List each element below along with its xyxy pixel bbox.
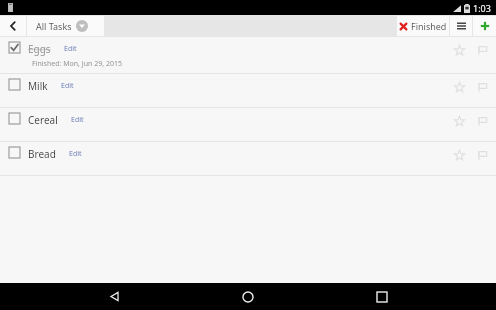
button[interactable]: Star task xyxy=(451,79,467,95)
button[interactable]: Flag task xyxy=(474,42,490,58)
button[interactable]: Recent apps xyxy=(362,283,402,310)
staticText: All Tasks xyxy=(36,20,72,32)
button[interactable]: Unchecked xyxy=(9,147,20,158)
button[interactable]: Finished xyxy=(397,16,449,36)
button[interactable]: Unchecked xyxy=(9,113,20,124)
staticText: Bread xyxy=(28,147,56,161)
staticText: Edit xyxy=(71,115,84,125)
staticText: Finished xyxy=(411,20,447,32)
button[interactable]: Back xyxy=(94,283,134,310)
button[interactable]: Star task xyxy=(451,42,467,58)
button[interactable]: Star task xyxy=(451,113,467,129)
staticText: Eggs xyxy=(28,42,51,56)
button[interactable]: All Tasks xyxy=(27,16,104,36)
button[interactable]: Flag task xyxy=(474,79,490,95)
button[interactable]: Flag task xyxy=(474,147,490,163)
staticText: Edit xyxy=(61,81,74,91)
button[interactable]: Flag task xyxy=(474,113,490,129)
button[interactable]: Checked xyxy=(9,42,20,53)
button[interactable]: Menu xyxy=(450,16,472,36)
button[interactable]: Edit xyxy=(71,115,84,125)
staticText: 1:03 xyxy=(473,2,491,14)
button[interactable]: Edit xyxy=(64,44,77,54)
button[interactable]: Edit xyxy=(61,81,74,91)
staticText: Finished: Mon, Jun 29, 2015 xyxy=(32,59,122,69)
button[interactable]: Back xyxy=(0,16,26,36)
button[interactable]: Unchecked xyxy=(0,142,496,175)
button[interactable]: Add task xyxy=(473,16,496,36)
button[interactable]: Home xyxy=(228,283,268,310)
button[interactable]: Star task xyxy=(451,147,467,163)
button[interactable]: Unchecked xyxy=(0,108,496,141)
staticText: Milk xyxy=(28,79,48,93)
staticText: Edit xyxy=(69,149,82,159)
button[interactable]: Unchecked xyxy=(9,79,20,90)
button[interactable]: Unchecked xyxy=(0,74,496,107)
button[interactable]: Edit xyxy=(69,149,82,159)
staticText: Cereal xyxy=(28,113,58,127)
staticText: Edit xyxy=(64,44,77,54)
button[interactable]: Checked xyxy=(0,37,496,73)
